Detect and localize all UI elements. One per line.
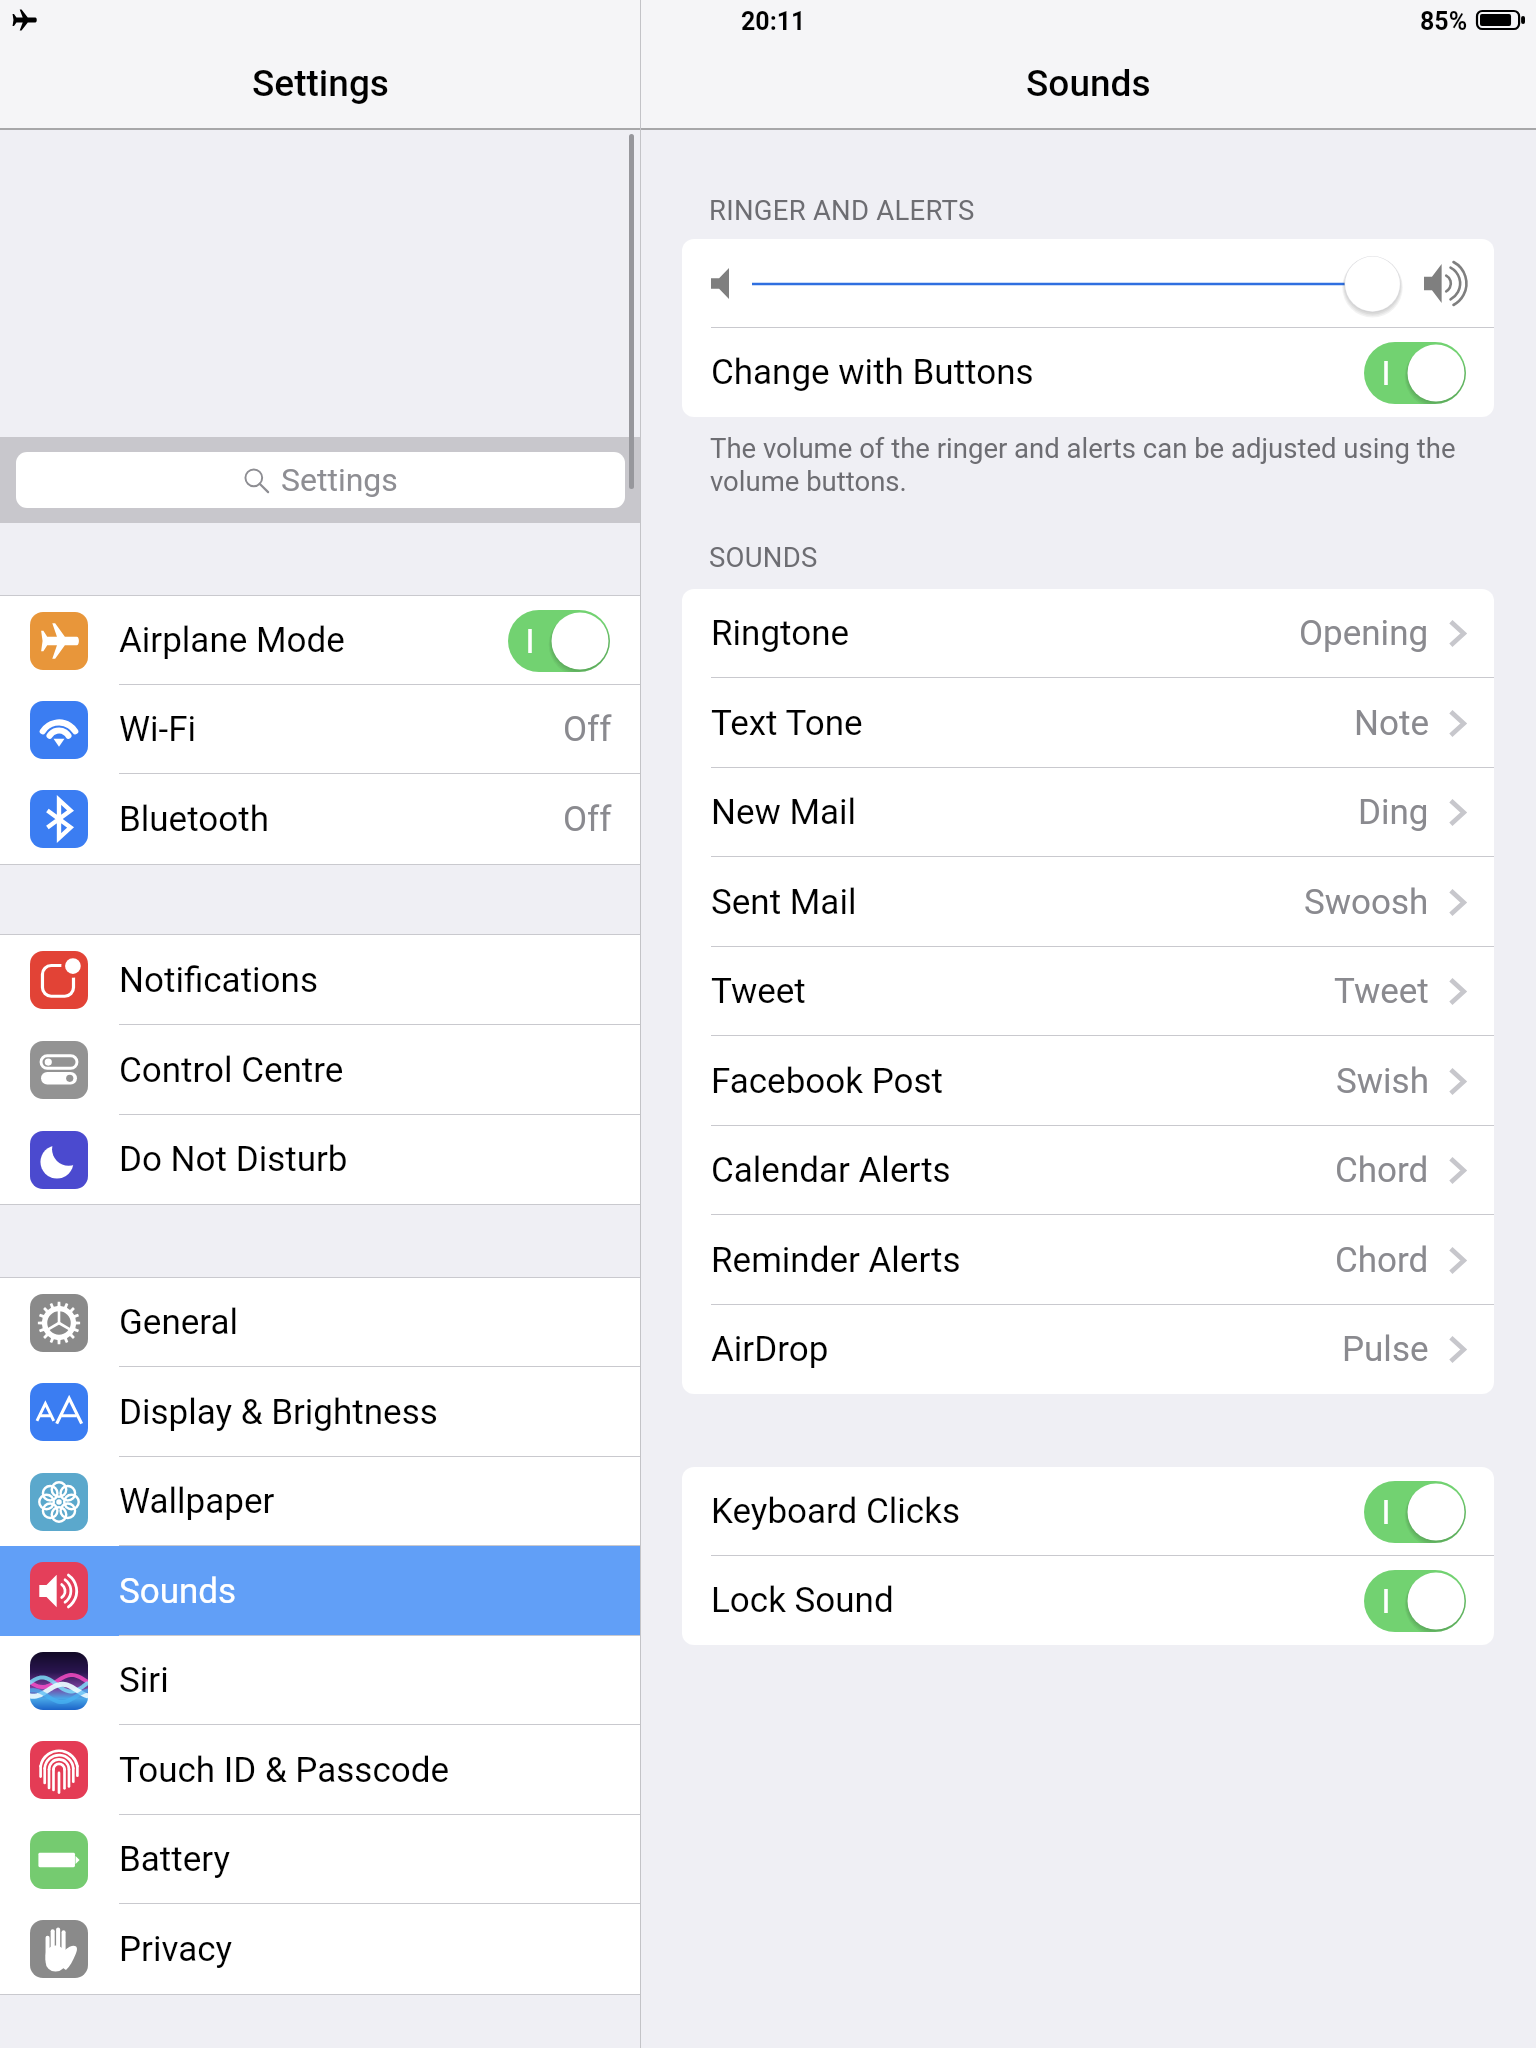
staticText: Siri (119, 1660, 169, 1701)
button[interactable]: Airplane Mode (0, 596, 640, 685)
staticText: Tweet (1334, 971, 1429, 1012)
button[interactable]: On (1364, 1570, 1466, 1632)
button[interactable]: Settings (16, 452, 625, 508)
button[interactable]: Privacy (0, 1904, 640, 1994)
button[interactable]: Bluetooth (0, 774, 640, 864)
staticText: Sent Mail (711, 882, 857, 923)
staticText: Notifications (119, 960, 318, 1001)
staticText: Display & Brightness (119, 1392, 438, 1433)
staticText: Chord (1335, 1150, 1429, 1191)
other: Battery 85 percent (1476, 10, 1525, 30)
staticText: Do Not Disturb (119, 1139, 348, 1180)
button[interactable]: Calendar Alerts (682, 1126, 1494, 1215)
button[interactable]: Sent Mail (682, 857, 1494, 947)
staticText: Reminder Alerts (711, 1240, 961, 1281)
button[interactable]: Do Not Disturb (0, 1115, 640, 1204)
staticText: Off (563, 799, 612, 840)
staticText: 85% (1420, 7, 1468, 36)
button[interactable]: Ringer and alerts volume (682, 239, 1494, 328)
other: Airplane mode on (11, 8, 37, 32)
button[interactable]: Facebook Post (682, 1036, 1494, 1126)
button[interactable]: Control Centre (0, 1025, 640, 1115)
staticText: Keyboard Clicks (711, 1491, 960, 1532)
staticText: Settings (252, 62, 389, 105)
staticText: Facebook Post (711, 1061, 944, 1102)
staticText: Sounds (119, 1571, 237, 1612)
staticText: SOUNDS (709, 541, 818, 573)
button[interactable]: Wallpaper (0, 1457, 640, 1546)
staticText: Touch ID & Passcode (119, 1750, 449, 1791)
staticText: General (119, 1302, 239, 1343)
staticText: Tweet (711, 971, 806, 1012)
button[interactable]: On (508, 610, 610, 672)
staticText: 20:11 (741, 7, 806, 36)
button[interactable]: Siri (0, 1636, 640, 1725)
staticText: Off (563, 709, 612, 750)
staticText: Wi-Fi (119, 709, 197, 750)
button[interactable]: Lock Sound (682, 1556, 1494, 1645)
staticText: AirDrop (711, 1329, 829, 1370)
button[interactable]: AirDrop (682, 1305, 1494, 1394)
staticText: Settings (281, 461, 398, 499)
button[interactable]: Change with Buttons (682, 328, 1494, 417)
staticText: volume buttons. (710, 465, 907, 497)
staticText: Opening (1299, 613, 1429, 654)
button[interactable]: Display & Brightness (0, 1367, 640, 1457)
staticText: Control Centre (119, 1050, 344, 1091)
staticText: Text Tone (711, 703, 863, 744)
button[interactable]: On (1364, 1481, 1466, 1543)
button[interactable]: Touch ID & Passcode (0, 1725, 640, 1815)
button[interactable]: On (1364, 342, 1466, 404)
button[interactable]: Sounds (0, 1546, 640, 1636)
staticText: New Mail (711, 792, 857, 833)
staticText: Calendar Alerts (711, 1150, 951, 1191)
staticText: Sounds (1026, 62, 1151, 105)
staticText: Battery (119, 1839, 231, 1880)
staticText: Note (1354, 703, 1429, 744)
staticText: Lock Sound (711, 1580, 894, 1621)
button[interactable]: Wi-Fi (0, 685, 640, 774)
staticText: The volume of the ringer and alerts can … (710, 432, 1456, 464)
staticText: Airplane Mode (119, 620, 345, 661)
staticText: Bluetooth (119, 799, 269, 840)
button[interactable]: Notifications (0, 935, 640, 1025)
staticText: Privacy (119, 1929, 233, 1970)
staticText: Wallpaper (119, 1481, 275, 1522)
button[interactable]: Keyboard Clicks (682, 1467, 1494, 1556)
button[interactable]: Tweet (682, 947, 1494, 1036)
button[interactable]: Ringtone (682, 589, 1494, 678)
staticText: Pulse (1342, 1329, 1429, 1370)
staticText: Swoosh (1304, 882, 1429, 923)
button[interactable]: Reminder Alerts (682, 1215, 1494, 1305)
button[interactable]: Battery (0, 1815, 640, 1904)
staticText: RINGER AND ALERTS (709, 194, 975, 226)
button[interactable]: General (0, 1278, 640, 1367)
staticText: Swish (1336, 1061, 1429, 1102)
button[interactable]: New Mail (682, 768, 1494, 857)
staticText: Change with Buttons (711, 352, 1034, 393)
staticText: Ding (1358, 792, 1429, 833)
staticText: Ringtone (711, 613, 850, 654)
button[interactable]: Text Tone (682, 678, 1494, 768)
staticText: Chord (1335, 1240, 1429, 1281)
